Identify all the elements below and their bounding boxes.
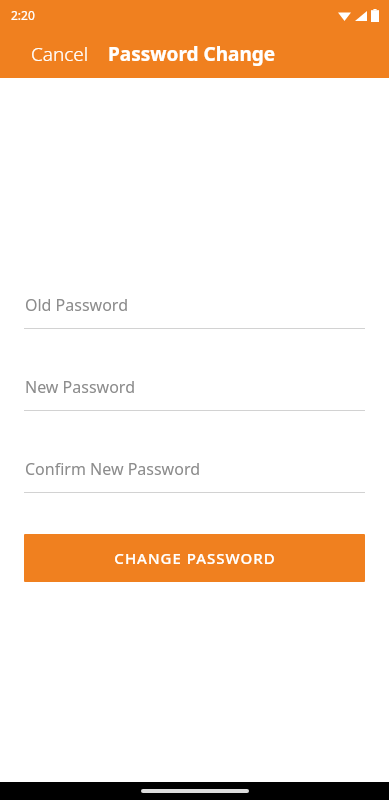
staticText: CHANGE PASSWORD <box>114 548 276 568</box>
staticText: 2:20 <box>11 7 35 23</box>
staticText: Password Change <box>108 41 276 67</box>
staticText: Confirm New Password <box>25 458 201 480</box>
staticText: Cancel <box>31 41 89 67</box>
button[interactable]: Old Password <box>24 294 365 329</box>
button[interactable]: Cancel <box>0 35 97 73</box>
button[interactable]: CHANGE PASSWORD <box>24 534 365 582</box>
other: Home gesture handle <box>141 789 249 793</box>
staticText: New Password <box>25 376 135 398</box>
button[interactable]: New Password <box>24 376 365 411</box>
button[interactable]: Confirm New Password <box>24 458 365 493</box>
staticText: Old Password <box>25 294 128 316</box>
